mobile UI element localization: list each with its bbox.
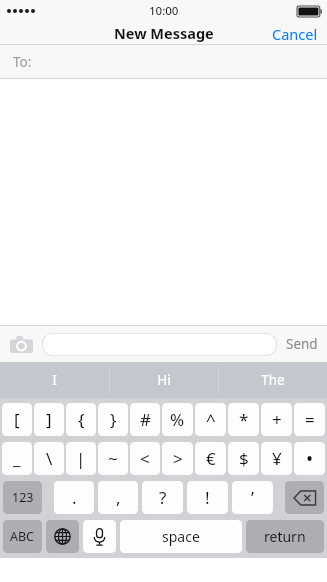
button[interactable]: The	[219, 362, 327, 398]
button[interactable]: ]	[34, 403, 64, 436]
button[interactable]: Send	[277, 329, 327, 359]
button[interactable]: !	[187, 481, 228, 514]
button[interactable]: ~	[98, 442, 128, 475]
staticText: {	[78, 408, 85, 431]
staticText: space	[162, 527, 200, 546]
button[interactable]: return	[246, 520, 324, 553]
button[interactable]: ,	[98, 481, 138, 514]
staticText: [	[14, 408, 20, 431]
button[interactable]: *	[228, 403, 259, 436]
staticText: I	[52, 371, 57, 389]
staticText: 123	[12, 489, 34, 506]
button[interactable]: +	[261, 403, 292, 436]
staticText: ]	[46, 408, 52, 431]
staticText: !	[205, 486, 210, 509]
button[interactable]: Cancel	[263, 22, 327, 44]
staticText: ^	[206, 408, 216, 431]
staticText: €	[206, 447, 216, 470]
button[interactable]: Change keyboard language	[46, 520, 79, 553]
staticText: New Message	[114, 23, 214, 43]
button[interactable]: =	[294, 403, 325, 436]
button[interactable]: ^	[195, 403, 226, 436]
staticText: ?	[159, 486, 167, 509]
staticText: $	[239, 447, 249, 470]
staticText: _	[13, 447, 21, 470]
button[interactable]: Camera	[0, 326, 42, 362]
button[interactable]: <	[130, 442, 160, 475]
staticText: .	[72, 486, 77, 509]
staticText: #	[140, 408, 151, 431]
button[interactable]: 123	[3, 481, 42, 514]
staticText: 10:00	[149, 3, 179, 19]
button[interactable]: >	[162, 442, 193, 475]
button[interactable]: }	[98, 403, 128, 436]
staticText: return	[264, 527, 306, 546]
staticText: |	[76, 447, 86, 470]
button[interactable]: .	[54, 481, 94, 514]
staticText: ABC	[10, 528, 35, 545]
button[interactable]: #	[130, 403, 160, 436]
staticText: To:	[13, 53, 32, 71]
button[interactable]: [	[2, 403, 32, 436]
button[interactable]: $	[228, 442, 259, 475]
button[interactable]: ABC	[3, 520, 42, 553]
staticText: ’	[251, 486, 254, 509]
button[interactable]: %	[162, 403, 193, 436]
button[interactable]: \	[34, 442, 64, 475]
staticText: }	[110, 408, 117, 431]
staticText: >	[173, 447, 183, 470]
button[interactable]: ?	[142, 481, 183, 514]
staticText: Send	[286, 335, 318, 353]
button[interactable]: I	[0, 362, 109, 398]
button[interactable]: {	[66, 403, 96, 436]
button[interactable]	[42, 333, 277, 356]
staticText: *	[239, 408, 249, 431]
button[interactable]: Backspace	[285, 481, 324, 514]
staticText: Hi	[157, 371, 171, 389]
button[interactable]: Hi	[110, 362, 218, 398]
button[interactable]: €	[195, 442, 226, 475]
staticText: \	[46, 447, 53, 470]
button[interactable]: _	[2, 442, 32, 475]
button[interactable]: ’	[232, 481, 273, 514]
staticText: The	[261, 371, 285, 389]
staticText: +	[272, 408, 282, 431]
staticText: •	[306, 446, 314, 472]
button[interactable]: space	[120, 520, 242, 553]
button[interactable]: ¥	[261, 442, 292, 475]
staticText: ~	[108, 447, 118, 470]
button[interactable]: Dictate	[83, 520, 116, 553]
staticText: ¥	[272, 447, 282, 470]
staticText: <	[140, 447, 150, 470]
button[interactable]: •	[294, 442, 325, 475]
button[interactable]: |	[66, 442, 96, 475]
staticText: ,	[116, 486, 121, 509]
button[interactable]: To:	[0, 45, 327, 78]
staticText: Cancel	[272, 24, 318, 42]
staticText: =	[305, 408, 315, 431]
staticText: %	[170, 408, 185, 431]
